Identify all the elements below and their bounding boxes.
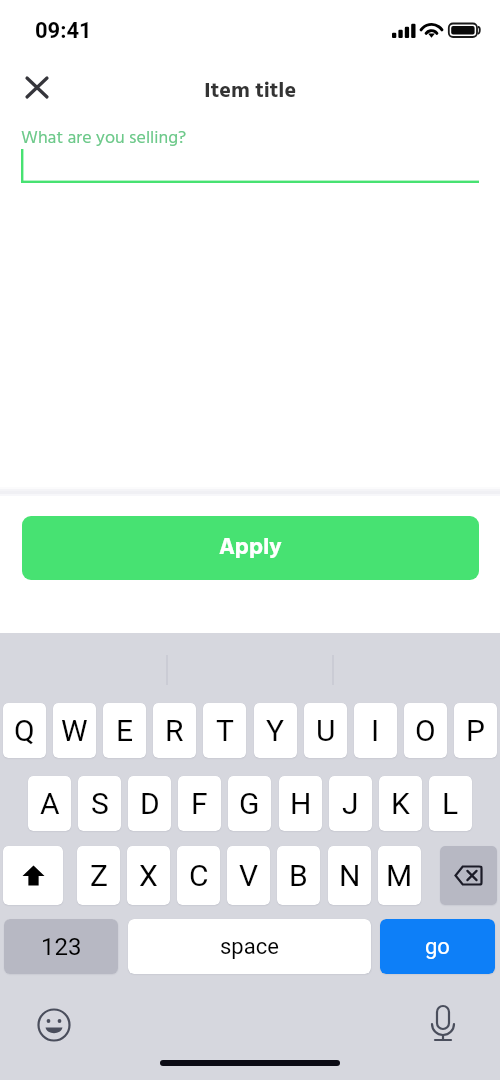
button[interactable]: 123 (4, 919, 118, 974)
staticText: space (220, 934, 279, 960)
staticText: E (116, 713, 134, 748)
staticText: P (466, 713, 485, 748)
staticText: Z (90, 858, 108, 893)
staticText: What are you selling? (21, 124, 187, 153)
button[interactable]: Dictation (421, 1001, 465, 1045)
button[interactable]: I (354, 703, 397, 758)
button[interactable]: X (127, 846, 170, 905)
button[interactable]: Z (77, 846, 120, 905)
staticText: Q (14, 713, 35, 748)
button[interactable]: V (227, 846, 270, 905)
staticText: O (415, 713, 436, 748)
button[interactable]: J (329, 776, 372, 831)
staticText: G (239, 786, 260, 821)
staticText: U (316, 713, 336, 748)
staticText: 09:41 (35, 18, 92, 44)
button[interactable]: B (277, 846, 320, 905)
button[interactable]: L (429, 776, 472, 831)
staticText: J (342, 786, 359, 821)
button[interactable]: Q (3, 703, 46, 758)
button[interactable]: H (279, 776, 322, 831)
button[interactable]: F (178, 776, 221, 831)
button[interactable]: go (380, 919, 495, 974)
staticText: Apply (219, 530, 282, 567)
button[interactable]: Shift (3, 846, 63, 905)
button[interactable]: P (454, 703, 497, 758)
button[interactable]: S (78, 776, 121, 831)
button[interactable]: N (328, 846, 371, 905)
staticText: Item title (204, 74, 297, 109)
staticText: V (239, 858, 259, 893)
staticText: M (386, 858, 413, 893)
staticText: H (290, 786, 312, 821)
button[interactable]: Close (12, 62, 62, 112)
button[interactable]: Emoji (32, 1003, 76, 1047)
button[interactable]: W (53, 703, 96, 758)
button[interactable]: U (304, 703, 347, 758)
button[interactable]: A (28, 776, 71, 831)
staticText: L (442, 786, 459, 821)
button[interactable]: E (103, 703, 146, 758)
staticText: W (61, 713, 88, 748)
staticText: F (191, 786, 208, 821)
staticText: R (165, 713, 184, 748)
staticText: S (91, 786, 109, 821)
staticText: N (339, 858, 361, 893)
staticText: 123 (41, 933, 82, 961)
staticText: T (216, 713, 234, 748)
button[interactable]: space (128, 919, 371, 974)
staticText: Y (266, 713, 285, 748)
button[interactable]: Backspace (440, 846, 497, 905)
staticText: I (371, 713, 380, 748)
staticText: go (425, 934, 450, 960)
button[interactable]: K (379, 776, 422, 831)
staticText: A (40, 786, 60, 821)
button[interactable]: Apply (22, 516, 479, 580)
button[interactable]: D (128, 776, 171, 831)
button[interactable]: M (378, 846, 421, 905)
button[interactable]: Y (254, 703, 297, 758)
button[interactable]: R (153, 703, 196, 758)
staticText: D (140, 786, 160, 821)
button[interactable]: C (177, 846, 220, 905)
staticText: B (289, 858, 308, 893)
staticText: X (139, 858, 158, 893)
button[interactable]: O (404, 703, 447, 758)
staticText: C (189, 858, 209, 893)
button[interactable]: T (203, 703, 246, 758)
button[interactable]: G (228, 776, 271, 831)
staticText: K (391, 786, 410, 821)
